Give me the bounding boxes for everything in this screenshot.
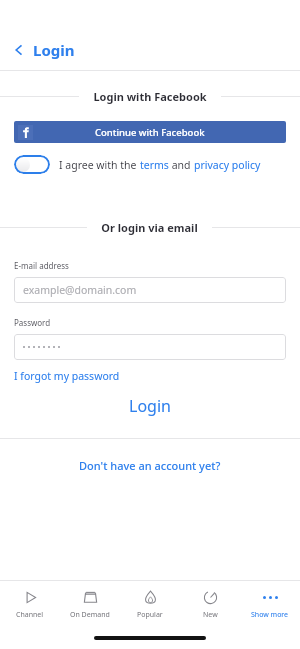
staticText: Continue with Facebook — [95, 126, 205, 139]
staticText: and — [169, 158, 194, 172]
other: Channel — [22, 589, 39, 606]
staticText: Or login via email — [101, 220, 198, 235]
button[interactable]: example@domain.com — [14, 277, 286, 303]
button[interactable]: Channel — [0, 585, 60, 624]
staticText: Password — [14, 317, 51, 328]
button[interactable]: I agree with the — [14, 155, 286, 174]
button[interactable]: terms — [140, 158, 169, 172]
button[interactable]: Show more — [240, 585, 300, 624]
staticText: Show more — [251, 610, 289, 620]
other: New — [202, 589, 219, 606]
button[interactable] — [14, 334, 286, 360]
button[interactable]: Back — [0, 30, 300, 70]
other: Back — [12, 43, 26, 57]
button[interactable]: On Demand — [60, 585, 120, 624]
staticText: I agree with the — [59, 158, 140, 172]
button[interactable]: Don't have an account yet? — [0, 458, 300, 473]
staticText: example@domain.com — [23, 283, 137, 297]
other: Popular — [142, 589, 159, 606]
staticText: On Demand — [70, 610, 110, 620]
staticText: Login with Facebook — [93, 89, 207, 104]
button[interactable]: Continue with Facebook — [14, 121, 286, 143]
button[interactable]: I forgot my password — [14, 369, 120, 383]
staticText: Channel — [16, 610, 44, 620]
staticText: Popular — [137, 610, 163, 620]
button[interactable]: Login — [0, 395, 300, 417]
button[interactable]: privacy policy — [194, 158, 261, 172]
staticText: Don't have an account yet? — [79, 458, 221, 473]
button[interactable]: New — [180, 585, 240, 624]
staticText: New — [203, 610, 218, 620]
staticText: Login — [33, 40, 75, 60]
staticText: E-mail address — [14, 260, 69, 271]
button[interactable]: Popular — [120, 585, 180, 624]
staticText: Login — [129, 395, 171, 417]
other: On Demand — [82, 589, 99, 606]
other: Show more — [262, 589, 279, 606]
